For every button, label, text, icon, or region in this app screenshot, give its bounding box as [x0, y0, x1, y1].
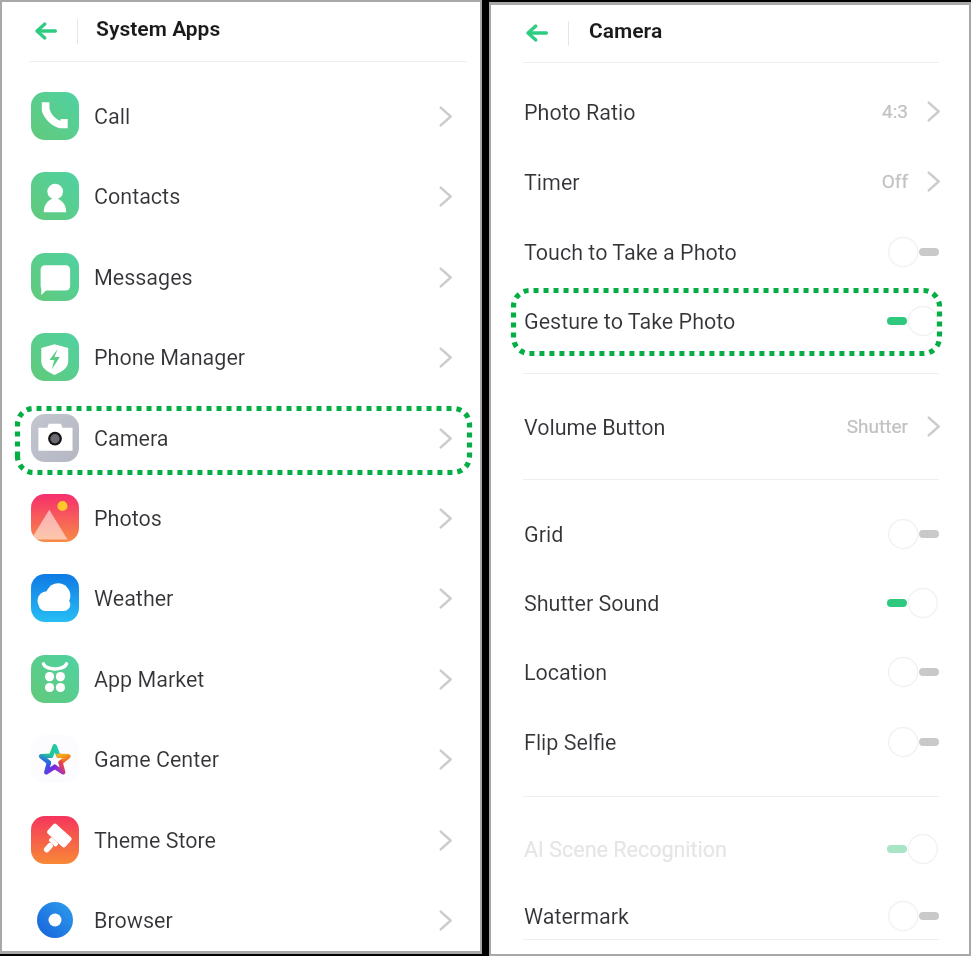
button[interactable]: AI Scene Recognition toggle — [887, 833, 939, 865]
staticText: Touch to Take a Photo — [524, 240, 737, 265]
staticText: System Apps — [96, 17, 221, 42]
staticText: Photo Ratio — [524, 100, 636, 125]
button[interactable]: Call — [2, 76, 480, 156]
staticText: Volume Button — [524, 415, 666, 440]
button[interactable]: Game Center — [2, 719, 480, 799]
button[interactable]: Grid — [491, 502, 969, 568]
button[interactable]: Location — [491, 640, 969, 706]
button[interactable]: Back — [25, 9, 71, 53]
button[interactable]: Flip Selfie toggle — [887, 726, 939, 758]
button[interactable]: Back — [516, 11, 562, 55]
staticText: Shutter Sound — [524, 591, 660, 616]
button[interactable]: Watermark — [491, 884, 969, 950]
button[interactable]: Location toggle — [887, 656, 939, 688]
staticText: Theme Store — [94, 828, 216, 853]
staticText: Timer — [524, 170, 580, 195]
button[interactable]: Shutter Sound — [491, 571, 969, 637]
staticText: Call — [94, 104, 131, 129]
staticText: Photos — [94, 506, 162, 531]
button[interactable]: Weather — [2, 558, 480, 638]
staticText: Gesture to Take Photo — [524, 309, 736, 334]
staticText: App Market — [94, 667, 205, 692]
button[interactable]: Camera — [2, 398, 480, 478]
button[interactable]: Grid toggle — [887, 518, 939, 550]
staticText: Grid — [524, 522, 564, 547]
staticText: Watermark — [524, 904, 629, 929]
button[interactable]: Shutter Sound toggle — [887, 587, 939, 619]
staticText: Camera — [589, 19, 663, 44]
staticText: 4:3 — [751, 100, 908, 122]
button[interactable]: Photo Ratio — [491, 80, 969, 146]
button[interactable]: Timer — [491, 150, 969, 216]
button[interactable]: AI Scene Recognition — [491, 817, 969, 883]
staticText: Browser — [94, 908, 173, 933]
staticText: AI Scene Recognition — [524, 837, 727, 862]
button[interactable]: Gesture to Take Photo toggle — [887, 305, 939, 337]
button[interactable]: Touch to Take a Photo toggle — [887, 236, 939, 268]
button[interactable]: Messages — [2, 237, 480, 317]
staticText: Contacts — [94, 184, 181, 209]
staticText: Game Center — [94, 747, 219, 772]
staticText: Messages — [94, 265, 193, 290]
staticText: Phone Manager — [94, 345, 246, 370]
staticText: Shutter — [751, 415, 908, 437]
staticText: Location — [524, 660, 608, 685]
staticText: Off — [751, 170, 908, 192]
button[interactable]: Phone Manager — [2, 317, 480, 397]
button[interactable]: Gesture to Take Photo — [491, 289, 969, 355]
staticText: Weather — [94, 586, 174, 611]
button[interactable]: Watermark toggle — [887, 900, 939, 932]
staticText: Flip Selfie — [524, 730, 617, 755]
button[interactable]: Flip Selfie — [491, 710, 969, 776]
button[interactable]: Contacts — [2, 156, 480, 236]
button[interactable]: Touch to Take a Photo — [491, 220, 969, 286]
staticText: Camera — [94, 426, 169, 451]
button[interactable]: Photos — [2, 478, 480, 558]
button[interactable]: Theme Store — [2, 800, 480, 880]
button[interactable]: Browser — [2, 880, 480, 956]
button[interactable]: Volume Button — [491, 395, 969, 461]
button[interactable]: App Market — [2, 639, 480, 719]
